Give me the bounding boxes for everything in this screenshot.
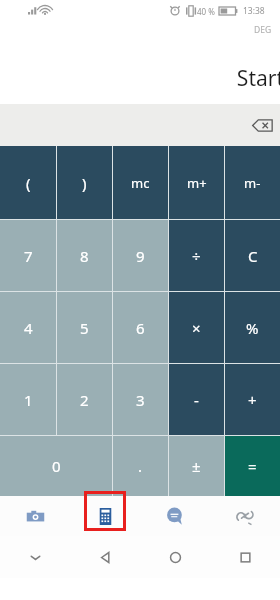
button[interactable]: Hide keyboard bbox=[0, 536, 70, 578]
staticText: ÷ bbox=[192, 246, 201, 266]
button[interactable]: Calculator bbox=[70, 496, 140, 536]
staticText: × bbox=[192, 318, 201, 338]
staticText: C bbox=[248, 246, 258, 266]
button[interactable]: C bbox=[225, 220, 280, 291]
button[interactable]: ± bbox=[169, 436, 224, 496]
staticText: m+ bbox=[187, 174, 207, 192]
staticText: + bbox=[248, 390, 257, 410]
staticText: 13:38 bbox=[243, 5, 265, 17]
staticText: ( bbox=[26, 173, 31, 193]
staticText: 3 bbox=[136, 390, 145, 410]
button[interactable]: Translate bbox=[140, 496, 210, 536]
staticText: = bbox=[248, 456, 257, 476]
staticText: 8 bbox=[80, 246, 89, 266]
button[interactable]: - bbox=[169, 364, 224, 435]
staticText: 5 bbox=[80, 318, 89, 338]
button[interactable]: + bbox=[225, 364, 280, 435]
staticText: 1 bbox=[24, 390, 33, 410]
button[interactable]: m+ bbox=[169, 146, 224, 219]
staticText: Start bbox=[236, 64, 280, 93]
button[interactable]: ÷ bbox=[169, 220, 224, 291]
button[interactable]: mc bbox=[113, 146, 168, 219]
button[interactable]: . bbox=[113, 436, 168, 496]
button[interactable]: Recents bbox=[210, 536, 280, 578]
button[interactable]: 1 bbox=[0, 364, 56, 435]
button[interactable]: 2 bbox=[57, 364, 112, 435]
button[interactable]: Camera bbox=[0, 496, 70, 536]
button[interactable]: Home bbox=[140, 536, 210, 578]
button[interactable]: % bbox=[225, 292, 280, 363]
staticText: DEG bbox=[254, 24, 272, 36]
button[interactable]: 8 bbox=[57, 220, 112, 291]
button[interactable]: 7 bbox=[0, 220, 56, 291]
staticText: m- bbox=[244, 174, 261, 192]
staticText: . bbox=[138, 456, 143, 476]
button[interactable]: ( bbox=[0, 146, 56, 219]
button[interactable]: = bbox=[225, 436, 280, 496]
staticText: % bbox=[246, 318, 259, 338]
button[interactable]: Link bbox=[210, 496, 280, 536]
button[interactable]: 5 bbox=[57, 292, 112, 363]
staticText: - bbox=[194, 390, 199, 410]
button[interactable]: 4 bbox=[0, 292, 56, 363]
button[interactable]: m- bbox=[225, 146, 280, 219]
button[interactable]: × bbox=[169, 292, 224, 363]
button[interactable]: 0 bbox=[0, 436, 112, 496]
button[interactable]: Back bbox=[70, 536, 140, 578]
button[interactable]: 9 bbox=[113, 220, 168, 291]
staticText: 7 bbox=[24, 246, 33, 266]
staticText: 4 bbox=[24, 318, 33, 338]
staticText: 9 bbox=[136, 246, 145, 266]
button[interactable]: 6 bbox=[113, 292, 168, 363]
button[interactable]: ) bbox=[57, 146, 112, 219]
staticText: 2 bbox=[80, 390, 89, 410]
staticText: ) bbox=[82, 173, 87, 193]
button[interactable]: Backspace bbox=[252, 118, 273, 133]
staticText: ± bbox=[192, 456, 201, 476]
staticText: 0 bbox=[52, 456, 61, 476]
staticText: 40 % bbox=[197, 6, 215, 17]
button[interactable]: 3 bbox=[113, 364, 168, 435]
staticText: 6 bbox=[136, 318, 145, 338]
staticText: mc bbox=[131, 174, 150, 192]
